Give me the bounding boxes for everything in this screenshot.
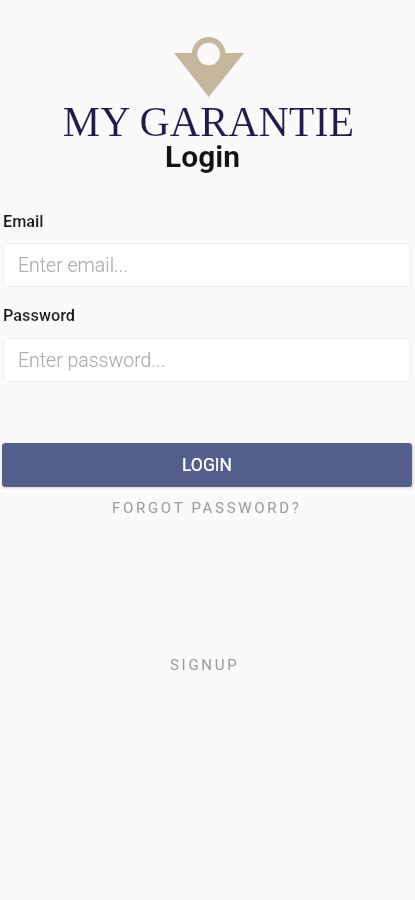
staticText: Login bbox=[0, 139, 410, 174]
button[interactable]: SIGNUP bbox=[164, 653, 249, 677]
staticText: Email bbox=[3, 212, 44, 231]
staticText: LOGIN bbox=[182, 455, 233, 476]
staticText: SIGNUP bbox=[170, 656, 240, 674]
staticText: MY GARANTIE bbox=[1, 99, 415, 146]
staticText: FORGOT PASSWORD? bbox=[112, 499, 302, 517]
staticText: Password bbox=[3, 306, 76, 325]
staticText: Enter email... bbox=[18, 254, 129, 277]
other: My Garantie logo bbox=[174, 37, 244, 97]
button[interactable]: Enter password... bbox=[3, 338, 411, 382]
staticText: Enter password... bbox=[18, 349, 166, 372]
button[interactable]: FORGOT PASSWORD? bbox=[106, 496, 311, 520]
button[interactable]: LOGIN bbox=[2, 443, 412, 487]
button[interactable]: Enter email... bbox=[3, 243, 411, 287]
